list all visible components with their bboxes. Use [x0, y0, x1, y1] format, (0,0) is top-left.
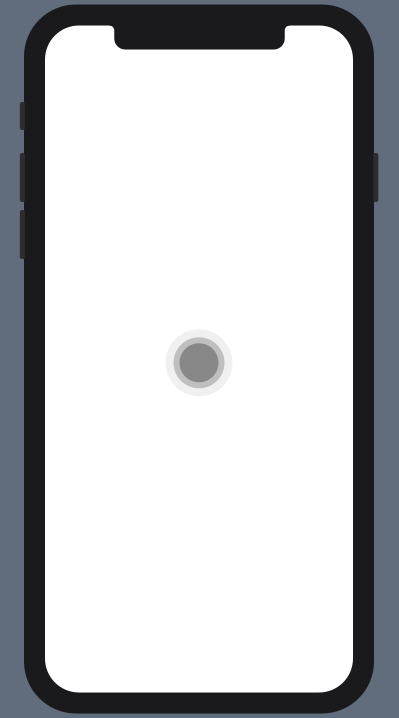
button[interactable]: Volume down — [20, 210, 25, 259]
button[interactable]: Ring/Silent switch — [20, 102, 25, 130]
button[interactable]: Volume up — [20, 153, 25, 202]
button[interactable]: Record — [165, 329, 232, 396]
button[interactable]: Side button — [373, 153, 378, 202]
